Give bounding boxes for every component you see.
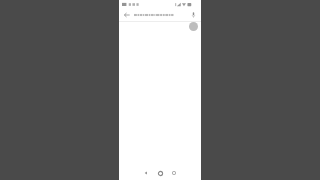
button[interactable]: Account (189, 22, 198, 31)
button[interactable]: Voice search (189, 10, 198, 19)
button[interactable] (134, 13, 186, 17)
button[interactable]: Recent apps (167, 167, 181, 179)
button[interactable]: Home (153, 167, 167, 179)
button[interactable]: Back (122, 10, 131, 19)
button[interactable]: Back (139, 167, 153, 179)
